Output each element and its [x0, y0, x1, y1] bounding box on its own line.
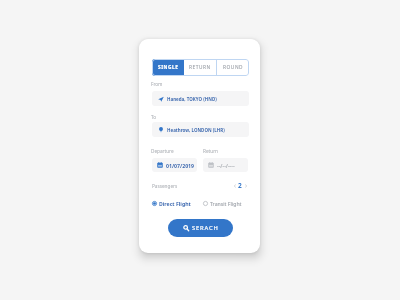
button[interactable]: SERACH [168, 219, 233, 237]
staticText: 2 [238, 181, 242, 190]
staticText: ROUND [223, 64, 244, 71]
button[interactable]: Direct Flight [152, 200, 191, 207]
staticText: --/--/---- [217, 162, 235, 169]
button[interactable]: Heathrow, LONDON (LHR) [152, 122, 249, 137]
button[interactable]: Increase passengers [242, 182, 249, 189]
button[interactable]: SINGLE [152, 59, 184, 76]
staticText: Heathrow, LONDON (LHR) [167, 127, 225, 133]
staticText: To [151, 114, 157, 120]
staticText: 01/07/2019 [166, 162, 195, 169]
staticText: SINGLE [158, 64, 179, 71]
staticText: Departure [151, 148, 174, 154]
staticText: From [151, 81, 163, 87]
button[interactable]: --/--/---- [203, 158, 248, 172]
button[interactable]: Decrease passengers [231, 182, 238, 189]
staticText: Passengers [152, 183, 178, 189]
staticText: SERACH [192, 224, 219, 232]
staticText: Direct Flight [159, 200, 191, 207]
button[interactable]: 01/07/2019 [152, 158, 197, 172]
button[interactable]: Transit Flight [203, 200, 242, 207]
button[interactable]: Haneda, TOKYO (HND) [152, 91, 249, 106]
staticText: Transit Flight [210, 200, 242, 207]
button[interactable]: RETURN [184, 59, 216, 76]
staticText: RETURN [189, 64, 211, 71]
staticText: Return [203, 148, 218, 154]
staticText: Haneda, TOKYO (HND) [167, 96, 217, 102]
button[interactable]: ROUND [217, 59, 249, 76]
